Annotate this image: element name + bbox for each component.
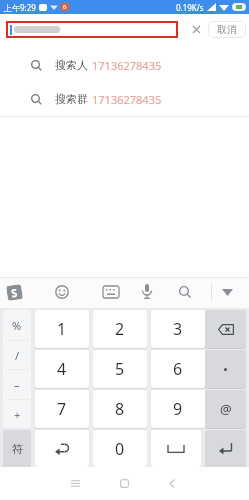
button[interactable]: @ bbox=[205, 390, 246, 428]
staticText: 8 bbox=[115, 398, 125, 420]
button[interactable] bbox=[205, 430, 246, 467]
button[interactable]: 搜索人 bbox=[0, 48, 249, 82]
staticText: % bbox=[12, 318, 22, 333]
staticText: 17136278435 bbox=[92, 58, 162, 73]
button[interactable]: S bbox=[6, 284, 23, 301]
staticText: 17136278435 bbox=[92, 92, 162, 107]
staticText: 4 bbox=[57, 358, 67, 380]
button[interactable] bbox=[205, 350, 246, 388]
button[interactable]: 2 bbox=[93, 310, 147, 348]
button[interactable]: % bbox=[3, 310, 31, 340]
button[interactable]: 9 bbox=[151, 390, 205, 428]
button[interactable]: 1 bbox=[35, 310, 89, 348]
button[interactable]: 6 bbox=[151, 350, 205, 388]
button[interactable] bbox=[103, 286, 119, 298]
button[interactable] bbox=[6, 21, 178, 38]
button[interactable]: 8 bbox=[93, 390, 147, 428]
staticText: 9 bbox=[173, 398, 183, 420]
button[interactable] bbox=[222, 289, 233, 296]
staticText: 2 bbox=[115, 318, 125, 340]
staticText: 3 bbox=[173, 318, 183, 340]
staticText: 0.19K/s bbox=[176, 2, 204, 13]
staticText: 搜索群 bbox=[55, 92, 88, 106]
button[interactable] bbox=[71, 480, 80, 487]
button[interactable] bbox=[35, 430, 89, 467]
staticText: 上午9:29 bbox=[4, 2, 36, 13]
button[interactable]: 5 bbox=[93, 350, 147, 388]
staticText: 6 bbox=[63, 3, 67, 11]
button[interactable] bbox=[205, 310, 246, 348]
button[interactable]: 0 bbox=[93, 430, 147, 467]
button[interactable] bbox=[120, 479, 129, 488]
staticText: S bbox=[10, 285, 19, 300]
button[interactable]: 搜索群 bbox=[0, 82, 249, 116]
staticText: 6 bbox=[173, 358, 183, 380]
button[interactable]: 7 bbox=[35, 390, 89, 428]
staticText: + bbox=[14, 407, 21, 422]
button[interactable] bbox=[141, 284, 153, 300]
staticText: – bbox=[14, 377, 20, 392]
button[interactable]: 3 bbox=[151, 310, 205, 348]
button[interactable] bbox=[151, 430, 201, 467]
button[interactable] bbox=[193, 26, 200, 33]
staticText: / bbox=[15, 348, 20, 363]
button[interactable] bbox=[169, 479, 175, 488]
staticText: @ bbox=[220, 400, 232, 418]
button[interactable]: + bbox=[3, 399, 31, 429]
staticText: 符 bbox=[12, 442, 23, 456]
staticText: 搜索人 bbox=[55, 58, 88, 72]
staticText: 7 bbox=[57, 398, 67, 420]
button[interactable] bbox=[55, 285, 69, 299]
button[interactable]: – bbox=[3, 369, 31, 399]
button[interactable] bbox=[179, 286, 192, 299]
staticText: 取消 bbox=[217, 23, 237, 36]
button[interactable]: 取消 bbox=[208, 21, 246, 38]
button[interactable]: 符 bbox=[3, 430, 31, 467]
staticText: 0 bbox=[115, 438, 125, 460]
staticText: 5 bbox=[115, 358, 125, 380]
button[interactable]: / bbox=[3, 340, 31, 370]
button[interactable]: 4 bbox=[35, 350, 89, 388]
staticText: 1 bbox=[57, 318, 67, 340]
